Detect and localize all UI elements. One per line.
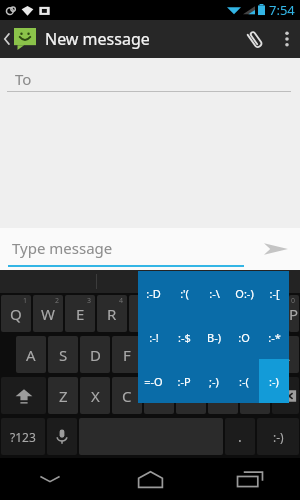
staticText: 7 bbox=[215, 296, 220, 306]
button[interactable]: Voice input bbox=[47, 418, 77, 455]
button[interactable]: :-* bbox=[259, 315, 289, 359]
button[interactable]: :-) bbox=[257, 418, 299, 455]
staticText: :-) bbox=[269, 374, 279, 389]
staticText: 5 bbox=[151, 296, 156, 306]
button[interactable]: . bbox=[225, 418, 255, 455]
button[interactable]: U bbox=[193, 295, 223, 332]
button[interactable]: P bbox=[289, 295, 299, 332]
button[interactable]: Home bbox=[100, 458, 200, 500]
staticText: :-$ bbox=[178, 330, 191, 345]
staticText: :-! bbox=[149, 330, 159, 345]
staticText: M bbox=[248, 386, 262, 406]
button[interactable]: D bbox=[80, 336, 110, 373]
staticText: D bbox=[90, 345, 101, 365]
button[interactable]: V bbox=[144, 377, 174, 414]
staticText: C bbox=[122, 386, 132, 406]
staticText: 8 bbox=[247, 296, 252, 306]
button[interactable]: W bbox=[33, 295, 63, 332]
button[interactable]: G bbox=[144, 336, 174, 373]
button[interactable]: :-$ bbox=[169, 315, 199, 359]
button[interactable]: :O bbox=[229, 315, 259, 359]
staticText: 3 bbox=[87, 296, 92, 306]
button[interactable]: :-D bbox=[138, 271, 169, 315]
button[interactable]: K bbox=[240, 336, 270, 373]
staticText: E bbox=[76, 304, 85, 324]
staticText: N bbox=[217, 386, 229, 406]
staticText: B bbox=[186, 386, 196, 406]
staticText: :O bbox=[238, 330, 250, 345]
staticText: Type message bbox=[12, 238, 113, 258]
button[interactable] bbox=[204, 270, 300, 293]
staticText: Q bbox=[10, 304, 22, 324]
staticText: X bbox=[91, 386, 100, 406]
staticText: Z bbox=[59, 386, 68, 406]
button[interactable]: M bbox=[240, 377, 270, 414]
button[interactable]: :-( bbox=[229, 359, 259, 403]
button[interactable]: Backspace bbox=[272, 377, 299, 414]
button[interactable] bbox=[97, 270, 203, 293]
staticText: W bbox=[41, 304, 55, 324]
button[interactable]: Z bbox=[48, 377, 78, 414]
button[interactable]: ;-) bbox=[199, 359, 229, 403]
button[interactable]: Attach bbox=[236, 20, 274, 58]
staticText: R bbox=[107, 304, 117, 324]
button[interactable]: T bbox=[129, 295, 159, 332]
button[interactable]: S bbox=[48, 336, 78, 373]
button[interactable]: J bbox=[208, 336, 238, 373]
staticText: :-* bbox=[268, 330, 281, 345]
staticText: S bbox=[59, 345, 68, 365]
button[interactable]: More options bbox=[274, 20, 300, 58]
staticText: ?123 bbox=[10, 429, 36, 445]
staticText: :-( bbox=[239, 374, 249, 389]
button[interactable]: :-! bbox=[138, 315, 169, 359]
staticText: :-) bbox=[273, 429, 284, 445]
button[interactable]: Q bbox=[1, 295, 31, 332]
staticText: 0 bbox=[291, 296, 296, 306]
staticText: 2 bbox=[55, 296, 60, 306]
button[interactable]: H bbox=[176, 336, 206, 373]
button[interactable]: ?123 bbox=[1, 418, 45, 455]
button[interactable]: O bbox=[257, 295, 287, 332]
staticText: 9 bbox=[279, 296, 284, 306]
button[interactable]: Navigate up bbox=[0, 28, 38, 50]
button[interactable]: B bbox=[176, 377, 206, 414]
button[interactable]: R bbox=[97, 295, 127, 332]
staticText: 6 bbox=[183, 296, 188, 306]
button[interactable]: O:-) bbox=[229, 271, 259, 315]
staticText: =-O bbox=[144, 374, 163, 389]
button[interactable]: :-) bbox=[259, 359, 289, 403]
staticText: K bbox=[250, 345, 260, 365]
button[interactable]: N bbox=[208, 377, 238, 414]
staticText: A bbox=[26, 345, 36, 365]
staticText: V bbox=[154, 386, 164, 406]
staticText: 7:54 bbox=[269, 1, 295, 19]
button[interactable]: :-[ bbox=[259, 271, 289, 315]
button[interactable]: B-) bbox=[199, 315, 229, 359]
button[interactable]: I bbox=[225, 295, 255, 332]
button[interactable]: X bbox=[80, 377, 110, 414]
staticText: :'( bbox=[180, 286, 189, 301]
staticText: P bbox=[289, 304, 299, 324]
button[interactable]: Send bbox=[252, 228, 300, 270]
button[interactable]: Recent apps bbox=[200, 458, 300, 500]
staticText: F bbox=[123, 345, 131, 365]
button[interactable]: E bbox=[65, 295, 95, 332]
button[interactable]: C bbox=[112, 377, 142, 414]
button[interactable]: Hide keyboard bbox=[0, 458, 100, 500]
button[interactable]: :-\ bbox=[199, 271, 229, 315]
button[interactable]: F bbox=[112, 336, 142, 373]
button[interactable]: L bbox=[272, 336, 299, 373]
button[interactable]: Y bbox=[161, 295, 191, 332]
button[interactable]: =-O bbox=[138, 359, 169, 403]
button[interactable]: Shift bbox=[1, 377, 46, 414]
staticText: :-P bbox=[177, 374, 191, 389]
button[interactable]: A bbox=[16, 336, 46, 373]
button[interactable]: :-P bbox=[169, 359, 199, 403]
button[interactable]: :'( bbox=[169, 271, 199, 315]
